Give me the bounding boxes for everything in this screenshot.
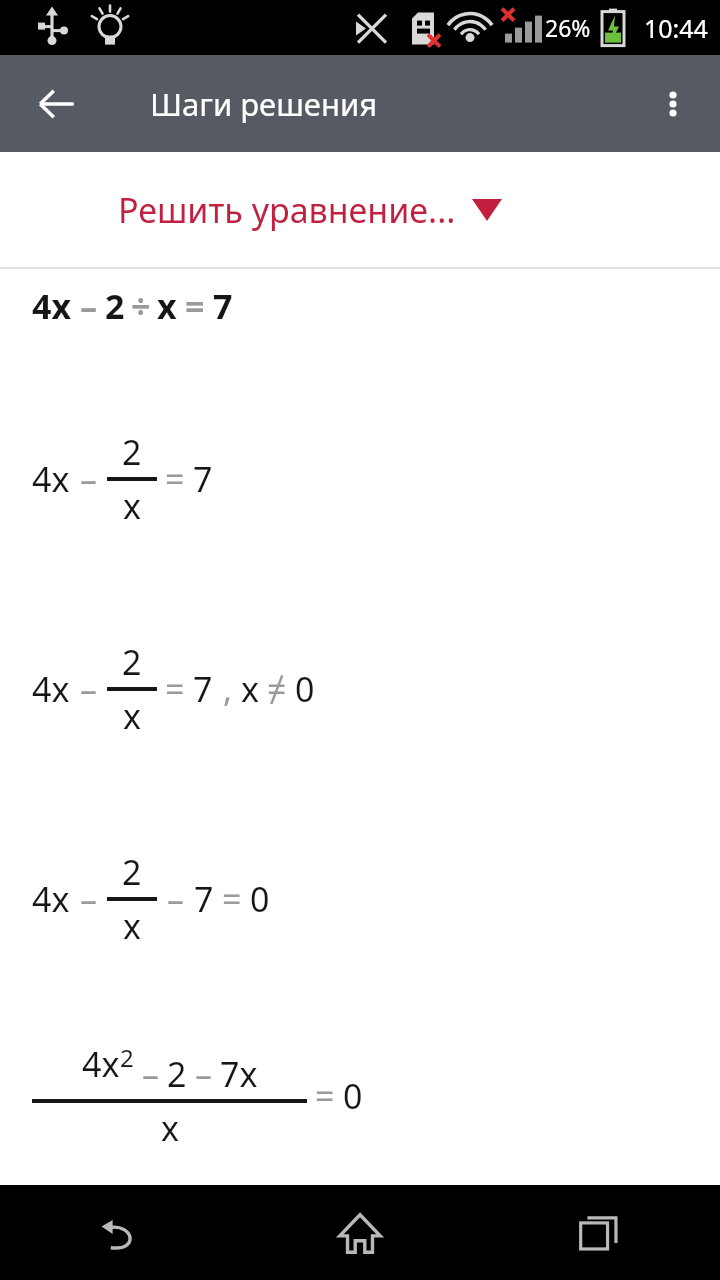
staticText: 2 <box>120 1041 134 1074</box>
staticText: = <box>165 666 185 712</box>
staticText: x <box>241 666 259 712</box>
staticText: x <box>161 1105 179 1151</box>
staticText: 0 <box>343 1073 363 1119</box>
staticText: 7 <box>213 283 233 329</box>
staticText: 4x <box>82 1041 120 1087</box>
staticText: 0 <box>250 876 270 922</box>
button[interactable]: Back <box>0 1185 240 1280</box>
staticText: – <box>80 283 97 329</box>
staticText: x <box>123 693 141 739</box>
staticText: 7 <box>193 456 213 502</box>
staticText: ≠ <box>267 666 287 712</box>
staticText: = <box>165 456 185 502</box>
staticText: – <box>80 456 97 502</box>
staticText: 26% <box>545 12 591 43</box>
staticText: 2 <box>122 849 142 895</box>
button[interactable]: More options <box>640 71 706 137</box>
staticText: – <box>167 876 184 922</box>
staticText: , <box>223 666 233 712</box>
staticText: 2 <box>122 429 142 475</box>
staticText: = <box>315 1073 335 1119</box>
staticText: ÷ <box>131 283 151 329</box>
staticText: 2 <box>167 1051 187 1097</box>
staticText: 4x <box>32 456 70 502</box>
staticText: x <box>157 283 177 329</box>
staticText: = <box>222 876 242 922</box>
staticText: – <box>80 666 97 712</box>
staticText: Шаги решения <box>150 83 378 125</box>
staticText: 4x <box>32 876 70 922</box>
staticText: 7 <box>194 876 214 922</box>
button[interactable]: Back <box>22 69 92 139</box>
staticText: 0 <box>295 666 315 712</box>
staticText: 10:44 <box>644 11 708 45</box>
staticText: Решить уравнение... <box>118 187 456 233</box>
staticText: 4x <box>32 666 70 712</box>
button[interactable]: Решить уравнение... <box>0 152 720 267</box>
staticText: x <box>123 483 141 529</box>
staticText: – <box>195 1051 212 1097</box>
staticText: = <box>185 283 205 329</box>
staticText: x <box>123 903 141 949</box>
staticText: 4x <box>32 283 72 329</box>
button[interactable]: Recent apps <box>480 1185 720 1280</box>
button[interactable]: Home <box>240 1185 480 1280</box>
staticText: 7 <box>193 666 213 712</box>
staticText: 7x <box>220 1051 258 1097</box>
staticText: 2 <box>105 283 125 329</box>
staticText: – <box>80 876 97 922</box>
staticText: – <box>142 1051 159 1097</box>
staticText: 2 <box>122 639 142 685</box>
